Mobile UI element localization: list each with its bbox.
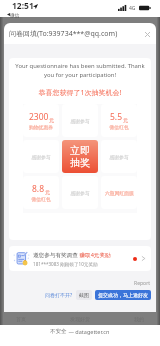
staticText: 微信红包 — [109, 124, 129, 130]
staticText: 邀您参与有奖调查 — [33, 252, 78, 259]
staticText: 感谢参与 — [31, 154, 51, 160]
staticText: 感谢参与 — [109, 154, 129, 160]
staticText: 不安全 — [50, 328, 67, 335]
button[interactable]: 感谢参与 — [62, 104, 98, 137]
button[interactable]: 发现好货 — [70, 316, 90, 322]
staticText: 赚取4元奖励 — [78, 251, 111, 259]
button[interactable]: 首页 — [16, 316, 26, 322]
button[interactable]: Close — [141, 28, 153, 40]
button[interactable]: 问卷打不开? — [45, 292, 73, 299]
button[interactable]: 我的 — [134, 316, 144, 322]
button[interactable]: 截图 — [76, 290, 92, 300]
staticText: 微信红包 — [31, 196, 51, 202]
button[interactable]: 提交成功，马上邀好友 — [95, 290, 151, 300]
staticText: — datagetter.cn — [67, 328, 110, 335]
staticText: Your questionnaire has been submitted. T… — [14, 62, 146, 79]
staticText: 立即 抽奖 — [70, 144, 90, 169]
staticText: 4G — [129, 5, 136, 12]
button[interactable]: 2300 — [23, 104, 59, 137]
staticText: 元 — [49, 117, 54, 123]
staticText: 8.8 — [32, 183, 45, 195]
staticText: 元 — [123, 117, 128, 123]
staticText: 元 — [45, 189, 50, 195]
staticText: 5.5 — [110, 111, 123, 123]
staticText: 2300 — [29, 111, 49, 123]
staticText: 截图 — [79, 292, 89, 298]
button[interactable]: 邀您参与有奖调查 — [9, 246, 151, 271]
button[interactable]: 8.8 — [23, 176, 59, 209]
staticText: 微信 — [10, 12, 20, 18]
button[interactable]: 感谢参与 — [101, 140, 137, 173]
staticText: 购物优惠券 — [29, 124, 53, 130]
staticText: 提交成功，马上邀好友 — [98, 292, 148, 298]
staticText: 六瓶网红面膜 — [105, 190, 134, 196]
button[interactable]: 5.5 — [101, 104, 137, 137]
staticText: 问卷回填(To:939734***@qq.com) — [9, 29, 118, 39]
button[interactable]: 六瓶网红面膜 — [101, 176, 137, 209]
staticText: 恭喜您获得了1次抽奖机会! — [9, 88, 151, 98]
staticText: 12:51 — [12, 0, 34, 12]
staticText: 感谢参与 — [70, 190, 90, 196]
staticText: Report — [4, 280, 150, 287]
button[interactable]: 感谢参与 — [23, 140, 59, 173]
button[interactable]: 立即 抽奖 — [62, 140, 98, 173]
staticText: 感谢参与 — [70, 118, 90, 124]
button[interactable]: 感谢参与 — [62, 176, 98, 209]
staticText: 181***3083 刚刚领了10元奖励 — [33, 261, 98, 267]
